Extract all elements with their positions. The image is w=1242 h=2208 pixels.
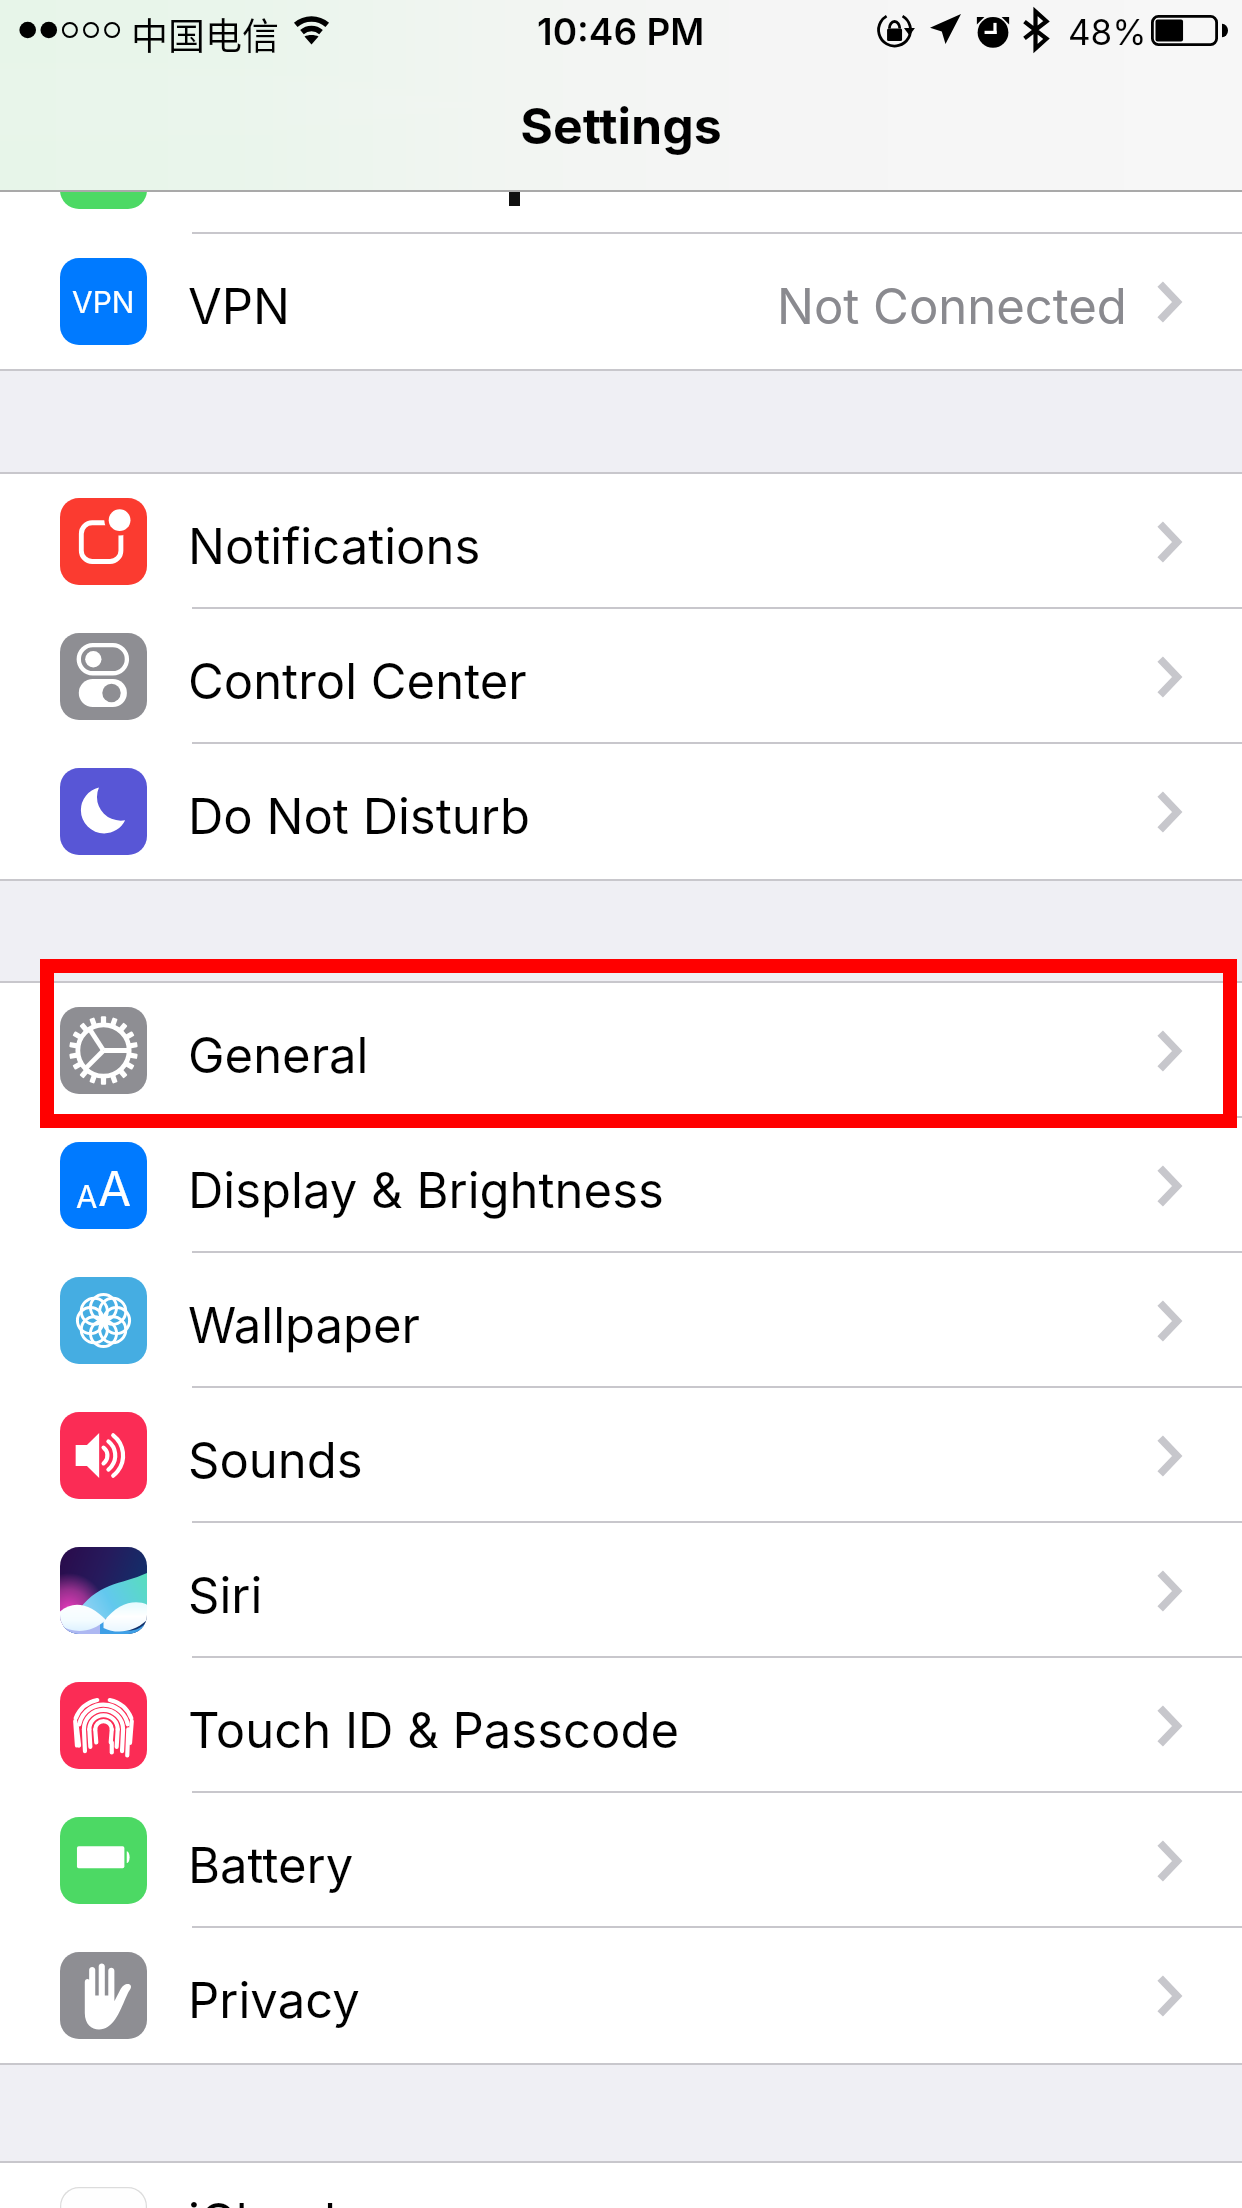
staticText: VPN <box>188 277 291 336</box>
staticText: Touch ID & Passcode <box>188 1701 680 1760</box>
button[interactable]: iCloud <box>0 2163 1242 2208</box>
staticText: General <box>188 1026 369 1085</box>
button[interactable]: Do Not Disturb <box>0 744 1242 879</box>
button[interactable]: Touch ID & Passcode <box>0 1658 1242 1793</box>
staticText: Settings <box>520 96 722 156</box>
staticText: Sounds <box>188 1431 363 1490</box>
button[interactable]: Sounds <box>0 1388 1242 1523</box>
staticText: 10:46 PM <box>537 9 705 54</box>
staticText: 中国电信 <box>131 7 279 61</box>
button[interactable]: Control Center <box>0 609 1242 744</box>
staticText: A <box>76 1178 98 1216</box>
button[interactable]: Personal Hotspot <box>0 192 1242 234</box>
staticText: 48% <box>1068 11 1147 53</box>
staticText: Siri <box>188 1566 263 1625</box>
staticText: Do Not Disturb <box>188 787 530 846</box>
staticText: A <box>98 1159 132 1217</box>
button[interactable]: Privacy <box>0 1928 1242 2063</box>
staticText: Battery <box>188 1836 354 1895</box>
button[interactable]: A <box>0 1118 1242 1253</box>
staticText: iCloud <box>188 2192 336 2208</box>
button[interactable]: General <box>0 983 1242 1118</box>
staticText: VPN <box>72 284 135 320</box>
button[interactable]: Siri <box>0 1523 1242 1658</box>
button[interactable]: Wallpaper <box>0 1253 1242 1388</box>
button[interactable]: Notifications <box>0 474 1242 609</box>
staticText: Wallpaper <box>188 1296 421 1355</box>
staticText: Not Connected <box>777 277 1127 336</box>
button[interactable]: VPN <box>0 234 1242 369</box>
staticText: Notifications <box>188 517 481 576</box>
button[interactable]: Battery <box>0 1793 1242 1928</box>
staticText: Control Center <box>188 652 527 711</box>
staticText: Privacy <box>188 1971 360 2030</box>
staticText: Display & Brightness <box>188 1161 664 1220</box>
